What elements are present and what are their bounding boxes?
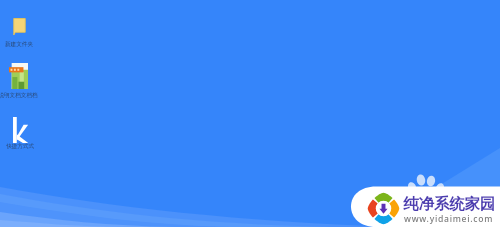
staticText: www.yidaimei.com [404, 213, 494, 225]
staticText: 说明文档文档档 [0, 92, 39, 99]
button[interactable]: 快捷方式式 [0, 115, 41, 153]
button[interactable]: 说明文档文档档 [0, 61, 39, 102]
button[interactable]: 新建文件夹 [0, 16, 40, 51]
button[interactable]: www.yidaimei.com [351, 186, 500, 227]
staticText: 纯净系统家园 [403, 194, 496, 213]
staticText: 快捷方式式 [0, 143, 41, 150]
staticText: 新建文件夹 [0, 41, 40, 48]
